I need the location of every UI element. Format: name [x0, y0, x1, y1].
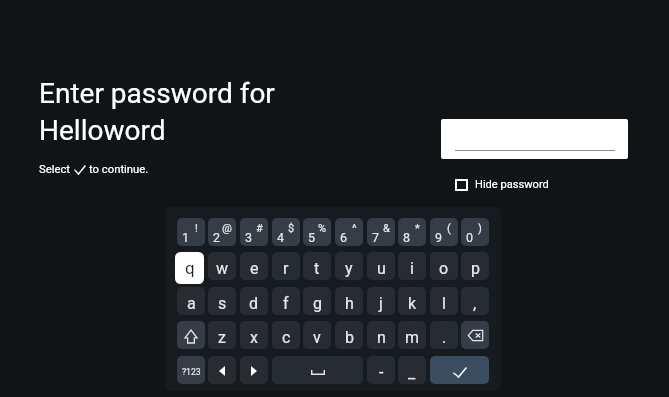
staticText: j — [379, 294, 383, 313]
staticText: $ — [288, 222, 295, 235]
staticText: Select — [39, 163, 71, 176]
button[interactable]: w — [208, 252, 236, 280]
button[interactable]: Backspace — [461, 321, 489, 349]
button[interactable]: z — [208, 321, 236, 349]
staticText: 6 — [340, 230, 348, 245]
button[interactable]: f — [272, 287, 300, 315]
staticText: 3 — [245, 230, 253, 245]
button[interactable]: 6 — [335, 218, 363, 246]
staticText: 1 — [182, 230, 190, 245]
staticText: e — [250, 259, 259, 278]
button[interactable]: Move cursor left — [208, 356, 236, 384]
staticText: 9 — [435, 230, 443, 245]
staticText: 0 — [466, 230, 474, 245]
staticText: a — [187, 294, 196, 313]
button[interactable]: Enter — [430, 356, 489, 384]
button[interactable]: , — [461, 287, 489, 315]
staticText: h — [345, 294, 354, 313]
button[interactable]: s — [208, 287, 236, 315]
staticText: . — [442, 328, 447, 347]
button[interactable]: r — [272, 252, 300, 280]
staticText: 7 — [372, 230, 380, 245]
staticText: , — [473, 294, 477, 313]
button[interactable]: Shift — [177, 321, 205, 349]
staticText: 2 — [213, 230, 221, 245]
staticText: Enter password for Helloword — [39, 77, 275, 147]
button[interactable]: 8 — [398, 218, 426, 246]
button[interactable]: Space — [272, 356, 363, 384]
staticText: k — [408, 294, 417, 313]
staticText: g — [313, 294, 322, 313]
button[interactable]: x — [240, 321, 268, 349]
staticText: t — [314, 259, 320, 278]
button[interactable]: j — [367, 287, 395, 315]
button[interactable]: 5 — [303, 218, 331, 246]
staticText: z — [218, 328, 226, 347]
button[interactable]: d — [240, 287, 268, 315]
staticText: ) — [478, 222, 482, 235]
staticText: b — [345, 328, 354, 347]
button[interactable]: 2 — [208, 218, 236, 246]
staticText: m — [405, 328, 420, 347]
staticText: @ — [222, 222, 232, 235]
staticText: ( — [447, 222, 451, 235]
button[interactable]: q — [175, 252, 204, 284]
button[interactable]: 9 — [430, 218, 458, 246]
staticText: 8 — [403, 230, 411, 245]
staticText: i — [410, 259, 414, 278]
button[interactable]: a — [177, 287, 205, 315]
staticText: y — [345, 259, 353, 278]
button[interactable]: 0 — [461, 218, 489, 246]
button[interactable]: 7 — [367, 218, 395, 246]
staticText: x — [250, 328, 258, 347]
staticText: p — [471, 259, 480, 278]
staticText: * — [415, 222, 420, 235]
staticText: l — [442, 294, 446, 313]
button[interactable]: 3 — [240, 218, 268, 246]
button[interactable]: . — [430, 321, 458, 349]
staticText: r — [283, 259, 289, 278]
staticText: ?123 — [182, 367, 201, 377]
staticText: & — [383, 222, 390, 235]
button[interactable]: b — [335, 321, 363, 349]
button[interactable]: l — [430, 287, 458, 315]
button[interactable]: ?123 — [177, 356, 205, 384]
staticText: w — [216, 259, 229, 278]
button[interactable]: 4 — [272, 218, 300, 246]
staticText: % — [318, 222, 327, 235]
button[interactable]: e — [240, 252, 268, 280]
button[interactable]: p — [461, 252, 489, 280]
staticText: n — [377, 328, 386, 347]
button[interactable]: Move cursor right — [240, 356, 268, 384]
staticText: ! — [195, 222, 198, 235]
button[interactable]: k — [398, 287, 426, 315]
button[interactable]: _ — [398, 356, 426, 384]
button[interactable]: h — [335, 287, 363, 315]
button[interactable]: i — [398, 252, 426, 280]
button[interactable]: u — [367, 252, 395, 280]
button[interactable]: Hide password — [455, 178, 549, 191]
button[interactable]: n — [367, 321, 395, 349]
staticText: v — [313, 328, 321, 347]
button[interactable]: m — [398, 321, 426, 349]
staticText: ^ — [352, 222, 357, 235]
staticText: 5 — [308, 230, 316, 245]
staticText: - — [379, 363, 384, 382]
button[interactable]: - — [367, 356, 395, 384]
staticText: d — [249, 294, 259, 313]
staticText: q — [185, 258, 195, 278]
staticText: f — [283, 294, 289, 313]
button[interactable]: y — [335, 252, 363, 280]
button[interactable]: g — [303, 287, 331, 315]
staticText: _ — [408, 363, 416, 382]
button[interactable]: o — [430, 252, 458, 280]
staticText: o — [439, 259, 449, 278]
staticText: Hide password — [475, 178, 549, 191]
staticText: s — [218, 294, 227, 313]
button[interactable]: t — [303, 252, 331, 280]
button[interactable]: Password field — [441, 119, 628, 159]
button[interactable]: 1 — [177, 218, 205, 246]
staticText: to continue. — [89, 163, 149, 176]
button[interactable]: v — [303, 321, 331, 349]
button[interactable]: c — [272, 321, 300, 349]
